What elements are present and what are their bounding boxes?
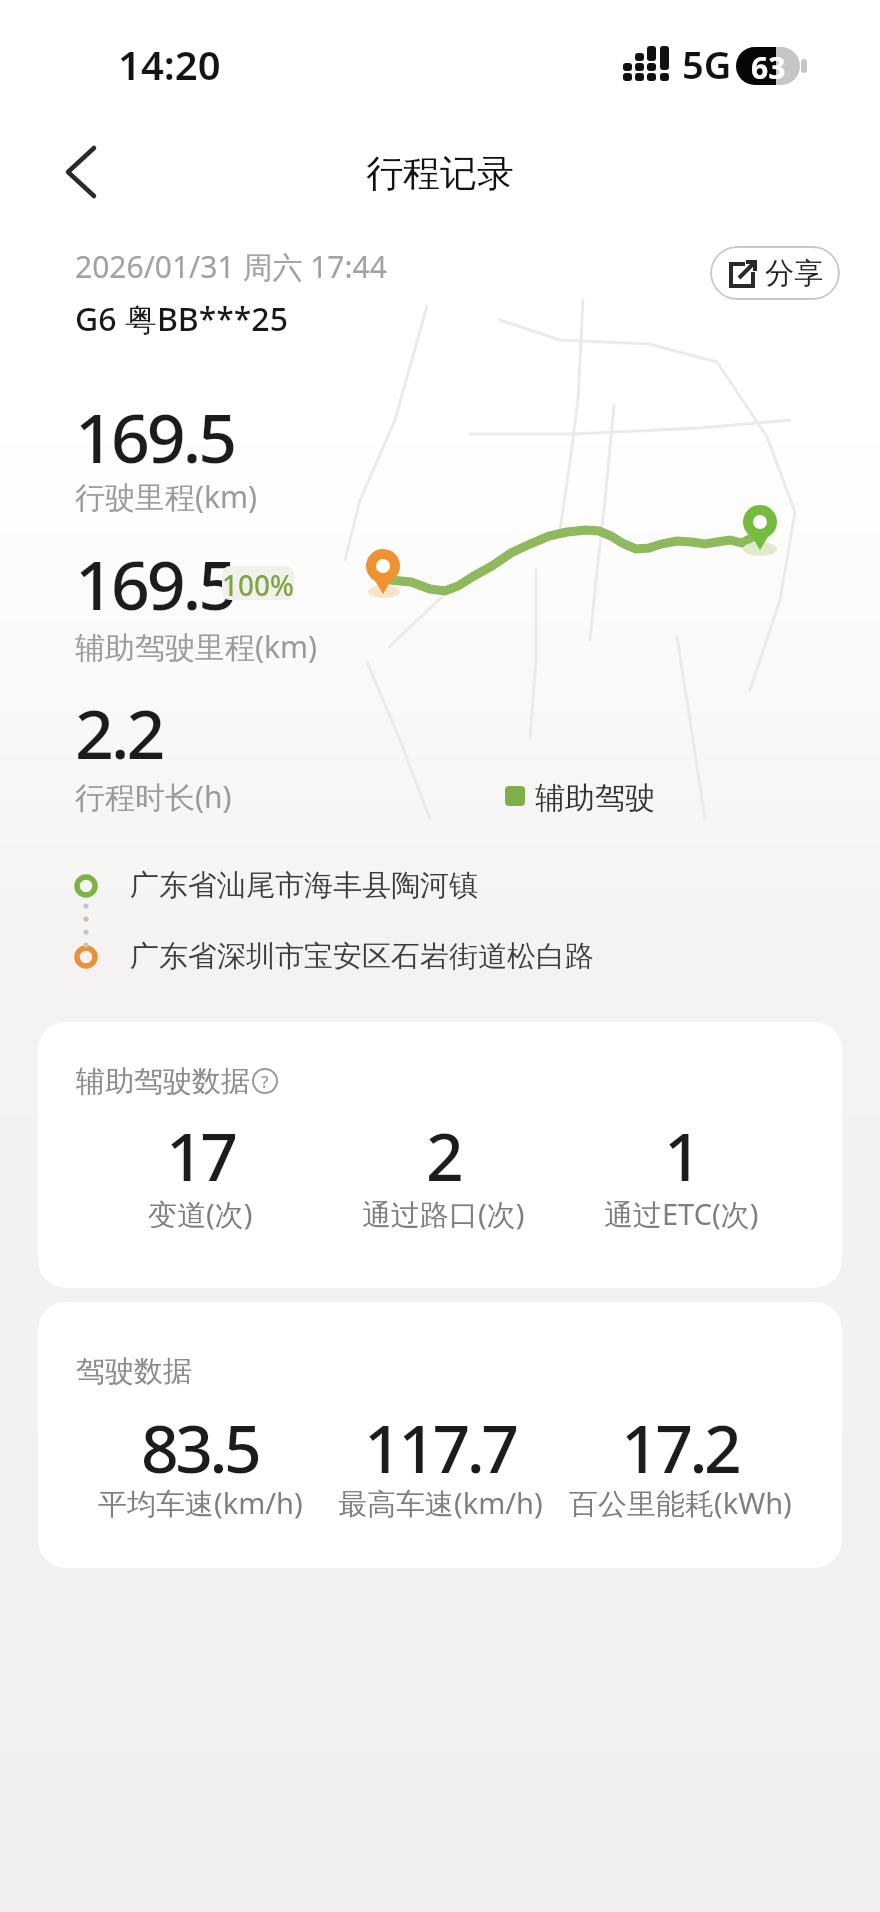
- staticText: 广东省深圳市宝安区石岩街道松白路: [130, 938, 594, 975]
- staticText: 平均车速(km/h): [98, 1483, 303, 1523]
- staticText: 2: [426, 1110, 461, 1200]
- staticText: 辅助驾驶: [535, 779, 655, 813]
- staticText: 驾驶数据: [76, 1353, 192, 1390]
- staticText: 辅助驾驶数据: [76, 1063, 250, 1100]
- staticText: 100%: [222, 566, 294, 600]
- staticText: 行程记录: [366, 150, 514, 197]
- staticText: ?: [261, 1070, 269, 1093]
- staticText: 117.7: [364, 1402, 516, 1492]
- staticText: 辅助驾驶里程(km): [75, 626, 318, 667]
- staticText: 最高车速(km/h): [338, 1483, 543, 1523]
- staticText: 分享: [765, 255, 823, 292]
- staticText: G6 粤BB***25: [75, 297, 288, 341]
- staticText: 通过路口(次): [362, 1194, 525, 1234]
- staticText: 变道(次): [148, 1194, 253, 1234]
- staticText: 广东省汕尾市海丰县陶河镇: [130, 867, 478, 904]
- staticText: 百公里能耗(kWh): [569, 1483, 792, 1523]
- staticText: 169.5: [75, 537, 235, 630]
- staticText: 行程时长(h): [75, 776, 232, 817]
- staticText: 通过ETC(次): [604, 1194, 759, 1234]
- staticText: 17: [166, 1110, 235, 1200]
- staticText: 63: [751, 47, 786, 85]
- staticText: 5G: [682, 38, 732, 90]
- staticText: 14:20: [118, 37, 221, 91]
- staticText: 17.2: [621, 1402, 739, 1492]
- staticText: 行驶里程(km): [75, 476, 258, 517]
- staticText: 2026/01/31 周六 17:44: [75, 246, 387, 287]
- staticText: 2.2: [75, 686, 163, 779]
- staticText: 83.5: [141, 1402, 259, 1492]
- button[interactable]: 分享: [710, 246, 840, 300]
- button[interactable]: 驾驶数据: [38, 1302, 842, 1568]
- button[interactable]: 辅助驾驶数据: [38, 1022, 842, 1288]
- button[interactable]: [52, 142, 108, 198]
- staticText: 169.5: [75, 390, 235, 483]
- staticText: 1: [664, 1110, 699, 1200]
